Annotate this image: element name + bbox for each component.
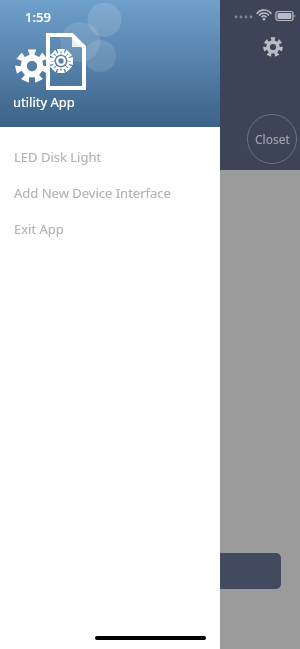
button[interactable]: Settings (263, 37, 283, 57)
button[interactable]: Closet (247, 114, 297, 164)
staticText: LED Disk Light (14, 148, 102, 166)
button[interactable]: Action (215, 553, 281, 589)
staticText: utility App (13, 93, 75, 111)
staticText: Add New Device Interface (14, 184, 171, 202)
button[interactable]: Add New Device Interface (0, 175, 220, 211)
staticText: Closet (255, 131, 290, 147)
button[interactable]: Exit App (0, 211, 220, 247)
staticText: 1:59 (25, 8, 51, 26)
button[interactable]: LED Disk Light (0, 139, 220, 175)
staticText: Exit App (14, 220, 64, 238)
